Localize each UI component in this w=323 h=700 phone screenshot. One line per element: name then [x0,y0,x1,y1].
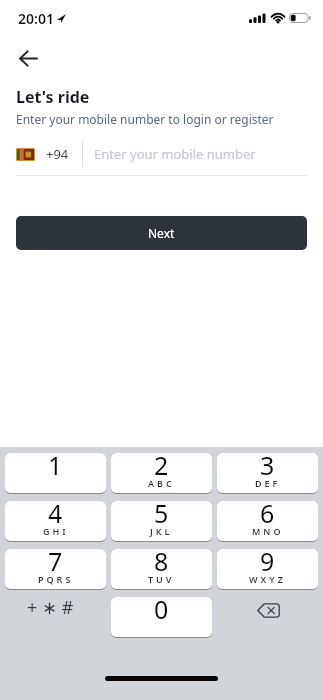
staticText: 6 [260,496,275,530]
staticText: 1 [48,448,63,482]
button[interactable] [217,597,318,638]
staticText: 4 [48,496,63,530]
staticText: Enter your mobile number to login or reg… [16,111,274,127]
staticText: 9 [260,544,275,578]
staticText: 0 [154,592,169,626]
button[interactable]: 9 [217,549,318,590]
button[interactable]: 4 [5,501,106,542]
button[interactable]: + ∗ # [5,597,106,638]
staticText: 8 [154,544,169,578]
staticText: 2 [154,448,169,482]
button[interactable]: +94 [16,141,307,167]
staticText: Let's ride [16,86,90,108]
button[interactable]: 3 [217,453,318,494]
staticText: + ∗ # [27,595,74,620]
button[interactable] [10,40,46,76]
staticText: JKL [150,525,173,537]
staticText: TUV [148,573,175,585]
button[interactable]: 7 [5,549,106,590]
button[interactable]: 6 [217,501,318,542]
button[interactable]: 0 [111,597,212,638]
staticText: WXYZ [249,573,286,585]
staticText: Enter your mobile number [94,145,256,163]
staticText: Next [148,225,175,241]
staticText: PQRS [38,573,74,585]
staticText: 7 [48,544,63,578]
button[interactable]: 1 [5,453,106,494]
button[interactable]: 2 [111,453,212,494]
staticText: 3 [260,448,275,482]
staticText: MNO [252,525,284,537]
button[interactable]: 5 [111,501,212,542]
button[interactable]: 8 [111,549,212,590]
staticText: DEF [255,477,281,489]
staticText: GHI [43,525,69,537]
button[interactable]: Next [16,216,307,250]
staticText: +94 [46,145,69,163]
staticText: ABC [148,477,175,489]
staticText: 20:01 [18,9,54,28]
staticText: 5 [154,496,169,530]
